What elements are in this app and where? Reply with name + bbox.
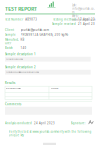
staticText: Sample received	[52, 22, 76, 26]
staticText: Instrumental resolution	[6, 87, 21, 89]
staticText: Manufacturer	[5, 38, 19, 45]
staticText: Comments	[5, 102, 21, 106]
staticText: Client	[5, 28, 14, 32]
staticText: Test Number	[5, 18, 23, 21]
staticText: Batch	[5, 46, 13, 50]
staticText: Sample description 2	[5, 65, 36, 69]
staticText: Signature:	[71, 121, 86, 125]
staticText: Sample description 1	[5, 52, 36, 56]
staticText: AB9873	[25, 18, 37, 21]
staticText: Sample	[5, 33, 16, 36]
staticText: Synthetic and quantitative analysis of a…	[6, 71, 39, 73]
staticText: PROB9812A GRAPHITE, 200 kg/Fb	[20, 33, 68, 36]
staticText: 21 April 23	[78, 22, 95, 26]
staticText: Analysis conducted	[5, 121, 32, 125]
staticText: Verify this test at www.yourlab.com/veri…	[8, 130, 91, 137]
staticText: Web: www.yourlab.com	[72, 14, 95, 21]
staticText: Testing method	[53, 18, 76, 21]
staticText: Purple zinc oxide sample	[6, 58, 23, 60]
staticText: 2.8 db-sigma	[50, 87, 58, 89]
staticText: Lab: info@yourlab.com	[72, 3, 95, 14]
staticText: 140	[20, 46, 26, 50]
staticText: 17 April 23	[78, 18, 95, 21]
staticText: KB	[20, 38, 24, 41]
staticText: 24 April 2023	[34, 121, 55, 125]
staticText: Results	[5, 81, 15, 85]
staticText: TEST REPORT	[5, 5, 37, 12]
staticText: yourlab@yourlab.com	[20, 28, 48, 32]
